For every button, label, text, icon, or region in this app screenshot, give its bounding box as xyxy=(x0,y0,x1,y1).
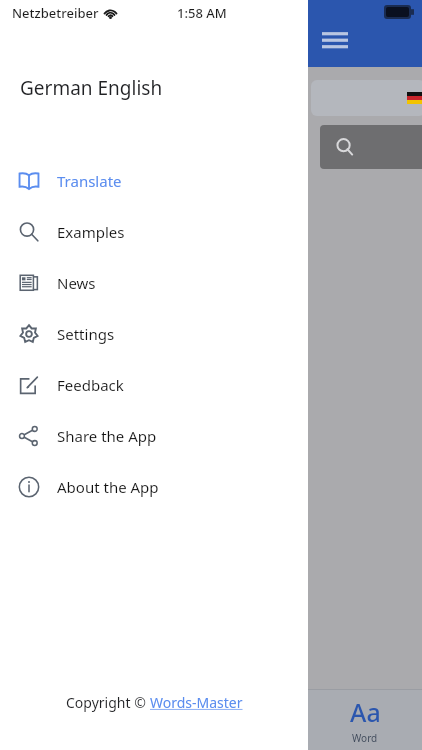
button[interactable]: Aa xyxy=(308,689,422,750)
staticText: German English xyxy=(20,75,163,101)
staticText: Translate xyxy=(57,171,122,191)
button[interactable]: About the App xyxy=(0,461,308,512)
staticText: 1:58 AM xyxy=(177,4,227,22)
button[interactable]: Feedback xyxy=(0,359,308,410)
staticText: Netzbetreiber xyxy=(12,4,99,22)
button[interactable]: Examples xyxy=(0,206,308,257)
staticText: News xyxy=(57,273,96,293)
staticText: Words-Master xyxy=(150,693,243,712)
staticText: Settings xyxy=(57,324,115,344)
staticText: Word xyxy=(352,731,378,745)
button[interactable]: Settings xyxy=(0,308,308,359)
button[interactable] xyxy=(320,125,422,169)
staticText: Share the App xyxy=(57,426,157,446)
staticText: Aa xyxy=(350,695,381,729)
staticText: Copyright © xyxy=(66,693,150,712)
button[interactable]: Translate xyxy=(0,155,308,206)
button[interactable]: Share the App xyxy=(0,410,308,461)
staticText: Feedback xyxy=(57,375,124,395)
staticText: About the App xyxy=(57,477,159,497)
button[interactable]: Open navigation menu xyxy=(322,28,356,54)
button[interactable]: Copyright © xyxy=(66,693,243,712)
staticText: Examples xyxy=(57,222,125,242)
button[interactable]: News xyxy=(0,257,308,308)
